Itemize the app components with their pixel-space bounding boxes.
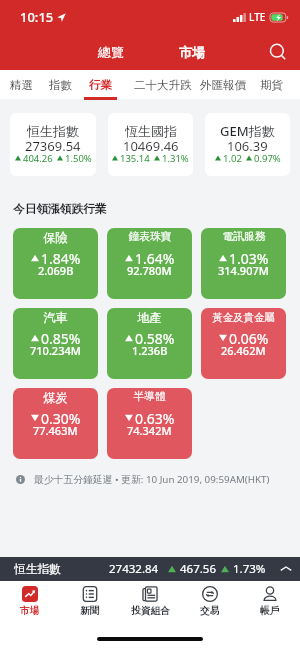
staticText: 27432.84 xyxy=(109,561,159,577)
button[interactable]: 恒生指數 xyxy=(10,113,96,176)
button[interactable]: 指數 xyxy=(41,70,80,99)
staticText: 0.30% xyxy=(41,409,81,428)
staticText: 1.64% xyxy=(135,249,175,268)
button[interactable]: 行業 xyxy=(81,70,120,99)
button[interactable]: 保險 xyxy=(13,228,98,299)
staticText: 汽車 xyxy=(43,310,68,325)
staticText: 行業 xyxy=(89,78,112,92)
staticText: 1.31% xyxy=(162,152,189,165)
staticText: 314.907M xyxy=(218,263,269,278)
staticText: 帳戶 xyxy=(260,605,280,617)
staticText: 1.02 xyxy=(223,152,242,165)
staticText: 期貨 xyxy=(260,78,283,92)
button[interactable]: 交易 xyxy=(180,581,240,621)
staticText: 1.84% xyxy=(41,249,81,268)
button[interactable]: 總覽 xyxy=(90,38,132,66)
staticText: 最少十五分鐘延遲 • 更新: 10 Jun 2019, 09:59AM(HKT) xyxy=(34,473,270,486)
staticText: 2.069B xyxy=(38,263,74,278)
staticText: 27369.54 xyxy=(25,137,81,155)
button[interactable]: 精選 xyxy=(2,70,41,99)
staticText: 投資組合 xyxy=(131,605,170,617)
staticText: 黃金及貴金屬 xyxy=(212,311,275,324)
staticText: 電訊服務 xyxy=(222,230,266,244)
staticText: 恒生指數 xyxy=(14,562,61,577)
staticText: 26.462M xyxy=(221,343,266,358)
button[interactable]: 鐘表珠寶 xyxy=(107,228,192,299)
staticText: 10469.46 xyxy=(123,137,179,155)
button[interactable]: 市場 xyxy=(0,581,60,621)
staticText: 0.63% xyxy=(135,409,175,428)
staticText: 404.26 xyxy=(23,152,53,165)
staticText: 0.85% xyxy=(41,329,81,348)
button[interactable]: 期貨 xyxy=(252,70,291,99)
button[interactable]: 地產 xyxy=(107,308,192,379)
staticText: 保險 xyxy=(43,230,68,245)
staticText: 0.58% xyxy=(135,329,175,348)
button[interactable]: 電訊服務 xyxy=(201,228,286,299)
button[interactable]: 市場 xyxy=(171,38,213,66)
button[interactable]: 投資組合 xyxy=(120,581,180,621)
staticText: 10:15 xyxy=(20,8,54,26)
staticText: 1.73% xyxy=(233,561,266,577)
staticText: 地產 xyxy=(137,310,162,325)
button[interactable]: 外匯報價 xyxy=(192,70,254,99)
staticText: 鐘表珠寶 xyxy=(128,230,172,244)
staticText: 交易 xyxy=(200,605,220,617)
button[interactable]: 恒生指數 xyxy=(0,557,300,581)
button[interactable]: 恆生國指 xyxy=(108,113,193,176)
button[interactable]: 帳戶 xyxy=(240,581,300,621)
staticText: 467.56 xyxy=(180,561,216,577)
button[interactable]: 二十大升跌 xyxy=(126,70,200,99)
staticText: 77.463M xyxy=(33,423,78,438)
button[interactable]: 汽車 xyxy=(13,308,98,379)
staticText: 1.50% xyxy=(65,152,92,165)
staticText: 135.14 xyxy=(120,152,150,165)
staticText: 0.06% xyxy=(229,329,269,348)
button[interactable]: 黃金及貴金屬 xyxy=(201,308,286,379)
staticText: 半導體 xyxy=(133,390,166,404)
staticText: 市場 xyxy=(179,44,205,60)
staticText: GEM指數 xyxy=(220,122,275,140)
staticText: 92.780M xyxy=(127,263,172,278)
staticText: 市場 xyxy=(20,605,40,617)
staticText: 恆生國指 xyxy=(125,123,177,139)
staticText: 指數 xyxy=(49,78,72,92)
staticText: 74.342M xyxy=(127,423,172,438)
staticText: 106.39 xyxy=(227,137,268,155)
staticText: 1.236B xyxy=(132,343,168,358)
button[interactable]: 煤炭 xyxy=(13,388,98,459)
staticText: 710.234M xyxy=(30,343,81,358)
staticText: 恒生指數 xyxy=(27,123,79,139)
staticText: 精選 xyxy=(10,78,33,92)
staticText: 1.03% xyxy=(229,249,269,268)
staticText: 二十大升跌 xyxy=(134,78,192,92)
staticText: 今日領漲領跌行業 xyxy=(13,202,107,217)
staticText: 外匯報價 xyxy=(200,78,246,92)
button[interactable]: 半導體 xyxy=(107,388,192,459)
button[interactable]: Search xyxy=(263,37,293,67)
button[interactable]: 新聞 xyxy=(60,581,120,621)
staticText: 煤炭 xyxy=(43,390,68,405)
staticText: 0.97% xyxy=(254,152,281,165)
staticText: 新聞 xyxy=(80,605,100,617)
staticText: 總覽 xyxy=(98,44,124,60)
button[interactable]: GEM指數 xyxy=(205,113,290,176)
staticText: LTE xyxy=(249,10,266,24)
